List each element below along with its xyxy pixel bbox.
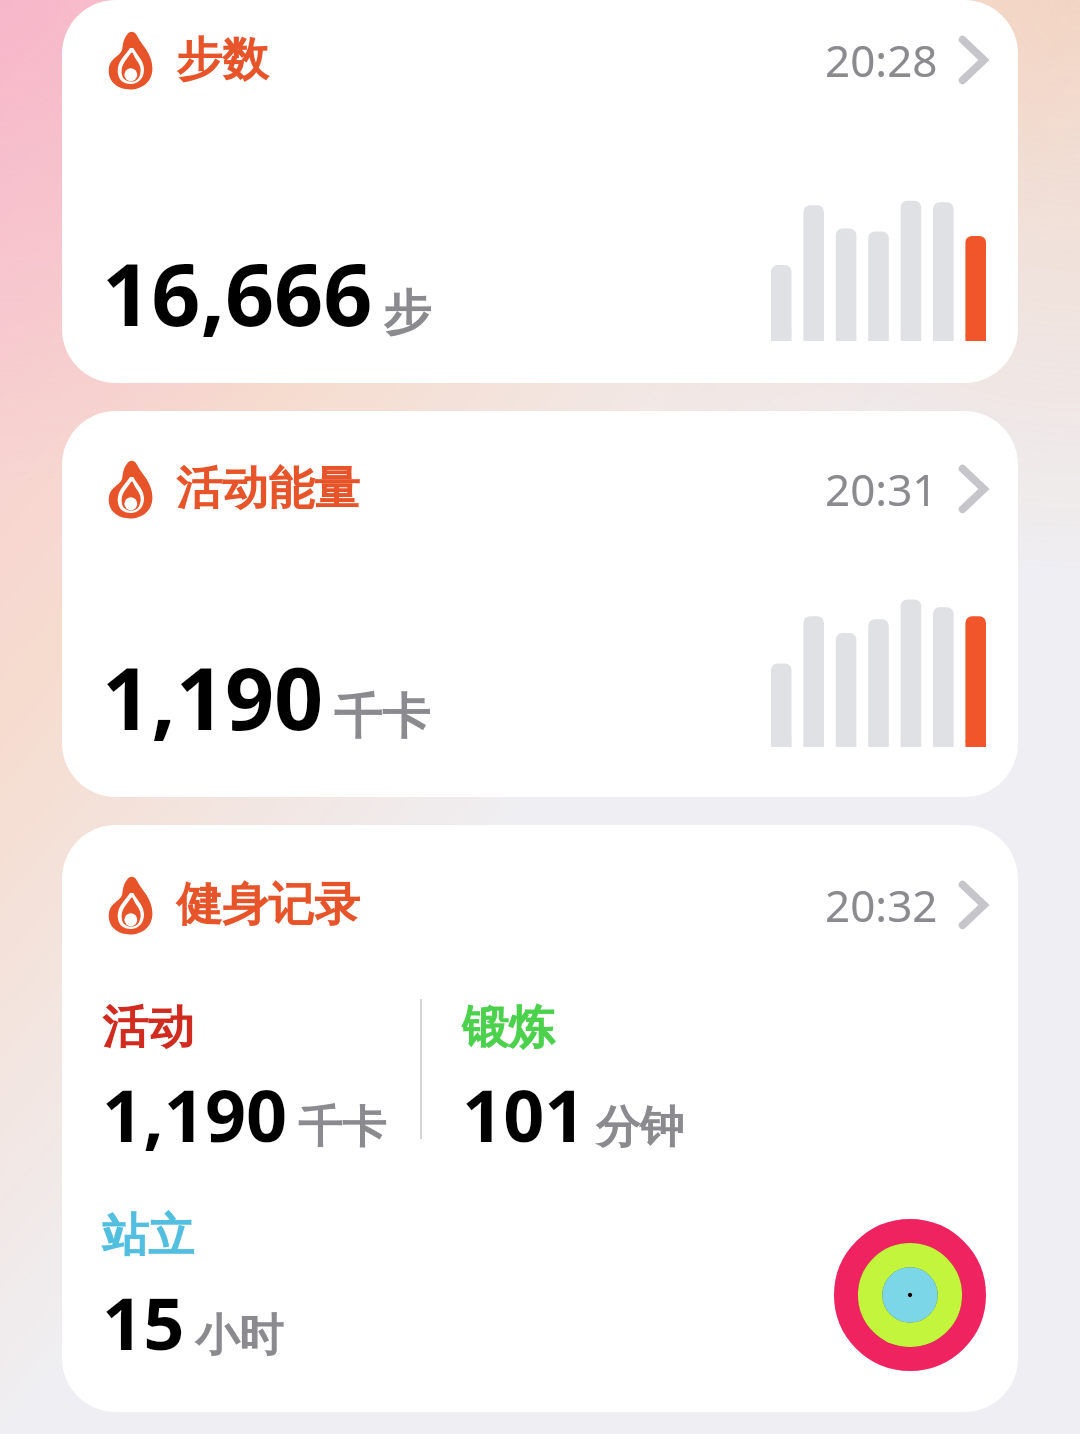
staticText: 活动能量 — [176, 460, 360, 518]
staticText: 站立 — [102, 1207, 194, 1265]
button[interactable]: 步数 — [62, 0, 1018, 383]
staticText: 锻炼 — [462, 999, 554, 1057]
staticText: 千卡 — [334, 687, 430, 747]
other: Activity rings — [834, 1219, 986, 1371]
staticText: 20:32 — [825, 875, 938, 935]
staticText: 16,666 — [102, 234, 373, 351]
staticText: 千卡 — [298, 1100, 386, 1155]
staticText: 步数 — [176, 31, 268, 89]
staticText: 20:31 — [825, 459, 938, 519]
staticText: 小时 — [195, 1308, 283, 1363]
staticText: 15 — [102, 1273, 185, 1371]
button[interactable]: 健身记录 — [62, 825, 1018, 1412]
staticText: 1,190 — [102, 638, 324, 755]
staticText: 1,190 — [102, 1065, 288, 1163]
staticText: 分钟 — [596, 1100, 684, 1155]
staticText: 20:28 — [825, 30, 938, 90]
button[interactable]: 活动能量 — [62, 411, 1018, 797]
staticText: 健身记录 — [176, 876, 360, 934]
staticText: 101 — [462, 1065, 586, 1163]
staticText: 步 — [383, 283, 431, 343]
staticText: 活动 — [102, 999, 194, 1057]
